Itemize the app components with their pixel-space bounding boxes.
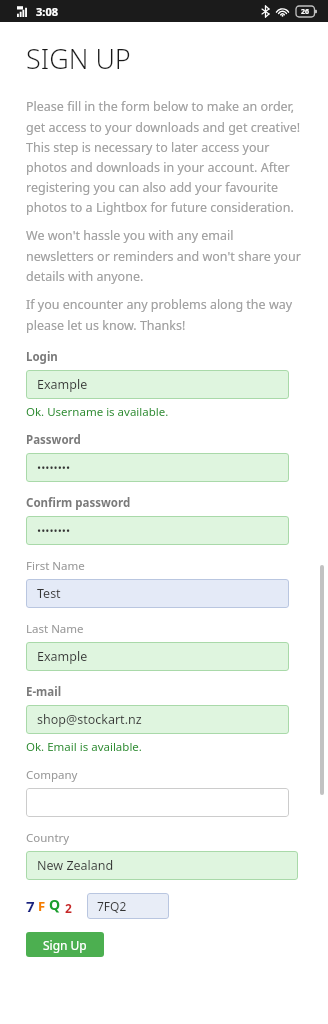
staticText: Ok. Email is available.: [26, 739, 142, 755]
staticText: Country: [26, 830, 70, 846]
button[interactable]: [26, 788, 289, 817]
button[interactable]: Example: [26, 642, 289, 671]
staticText: 3:08: [36, 4, 58, 19]
staticText: 7FQ2: [97, 898, 127, 914]
other: Wi-Fi: [276, 7, 289, 17]
staticText: 26: [301, 7, 310, 17]
staticText: ••••••••: [37, 523, 71, 538]
staticText: shop@stockart.nz: [37, 711, 142, 728]
staticText: First Name: [26, 558, 85, 574]
staticText: Sign Up: [43, 937, 87, 953]
staticText: Company: [26, 767, 78, 783]
staticText: Confirm password: [26, 495, 131, 511]
button[interactable]: ••••••••: [26, 453, 289, 482]
staticText: 2: [65, 900, 72, 916]
button[interactable]: New Zealand: [26, 851, 298, 880]
staticText: Example: [37, 376, 88, 393]
staticText: 7: [26, 896, 35, 916]
button[interactable]: 7FQ2: [87, 893, 169, 919]
other: Bluetooth: [262, 6, 269, 17]
staticText: We won't hassle you with any email newsl…: [26, 227, 304, 284]
button[interactable]: Test: [26, 579, 289, 608]
staticText: Test: [37, 585, 61, 602]
staticText: Password: [26, 432, 81, 448]
button[interactable]: Sign Up: [26, 932, 104, 957]
staticText: New Zealand: [37, 857, 114, 874]
staticText: SIGN UP: [26, 40, 131, 77]
staticText: Please fill in the form below to make an…: [26, 98, 304, 215]
staticText: Example: [37, 648, 88, 665]
staticText: Last Name: [26, 621, 84, 637]
button[interactable]: shop@stockart.nz: [26, 705, 289, 734]
staticText: Ok. Username is available.: [26, 404, 169, 420]
button[interactable]: ••••••••: [26, 516, 289, 545]
button[interactable]: Example: [26, 370, 289, 399]
staticText: ••••••••: [37, 460, 71, 475]
staticText: If you encounter any problems along the …: [26, 296, 304, 333]
staticText: Q: [49, 895, 61, 914]
staticText: F: [38, 897, 46, 915]
staticText: Login: [26, 349, 58, 365]
staticText: E-mail: [26, 684, 62, 700]
